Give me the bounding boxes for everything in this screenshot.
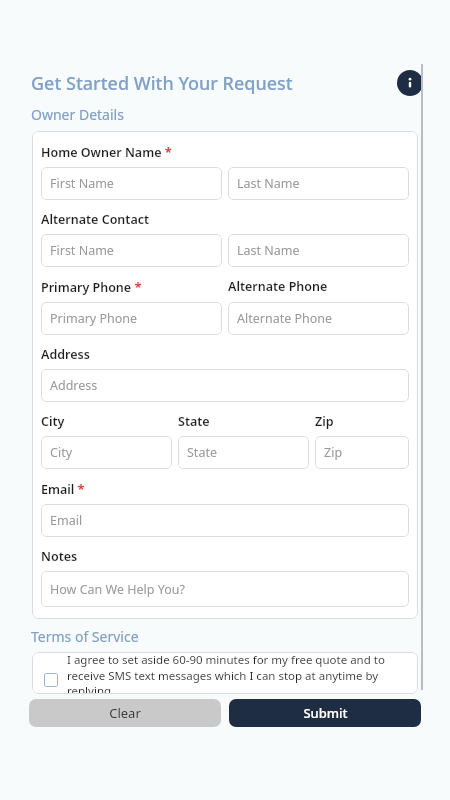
button[interactable]: Email (41, 504, 409, 537)
staticText: Primary Phone (50, 310, 138, 327)
button[interactable]: Zip (315, 436, 409, 469)
button[interactable]: How Can We Help You? (41, 571, 409, 607)
button[interactable]: City (41, 436, 172, 469)
staticText: Notes (41, 548, 78, 565)
staticText: Submit (303, 704, 348, 722)
button[interactable]: Last Name (228, 234, 409, 267)
button[interactable]: Primary Phone (41, 302, 222, 335)
button[interactable]: Agree to terms (32, 652, 418, 694)
staticText: Address (41, 346, 90, 363)
staticText: Primary Phone * (41, 278, 142, 296)
staticText: Clear (109, 704, 141, 722)
staticText: Terms of Service (31, 627, 139, 646)
staticText: Zip (324, 444, 343, 461)
staticText: I agree to set aside 60-90 minutes for m… (67, 652, 410, 694)
staticText: State (187, 444, 217, 461)
button[interactable]: Alternate Phone (228, 302, 409, 335)
button[interactable]: Address (41, 369, 409, 402)
staticText: City (50, 444, 73, 461)
button[interactable]: Information (397, 70, 423, 96)
staticText: Get Started With Your Request (31, 71, 293, 96)
staticText: Alternate Phone (228, 278, 328, 295)
staticText: Last Name (237, 242, 300, 259)
staticText: City (41, 413, 65, 430)
button[interactable]: First Name (41, 167, 222, 200)
button[interactable]: Last Name (228, 167, 409, 200)
staticText: Alternate Phone (237, 310, 333, 327)
staticText: Last Name (237, 175, 300, 192)
staticText: Alternate Contact (41, 211, 150, 228)
other: Agree to terms (44, 673, 58, 687)
staticText: Email (50, 512, 83, 529)
button[interactable]: State (178, 436, 309, 469)
button[interactable]: Submit (229, 699, 421, 727)
button[interactable]: Clear (29, 699, 221, 727)
button[interactable]: First Name (41, 234, 222, 267)
staticText: First Name (50, 175, 114, 192)
staticText: Owner Details (31, 105, 124, 124)
staticText: First Name (50, 242, 114, 259)
staticText: Address (50, 377, 98, 394)
staticText: Home Owner Name * (41, 143, 172, 161)
staticText: How Can We Help You? (50, 581, 185, 598)
staticText: Email * (41, 480, 85, 498)
staticText: State (178, 413, 210, 430)
staticText: Zip (315, 413, 334, 430)
